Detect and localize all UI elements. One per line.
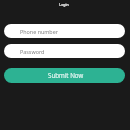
button[interactable]: Password	[4, 44, 125, 58]
staticText: Submit Now	[48, 71, 84, 80]
staticText: Phone number	[20, 28, 58, 35]
staticText: Login	[59, 2, 69, 7]
button[interactable]: Phone number	[4, 24, 125, 38]
staticText: Password	[20, 48, 45, 55]
button[interactable]: Submit Now	[4, 68, 125, 83]
